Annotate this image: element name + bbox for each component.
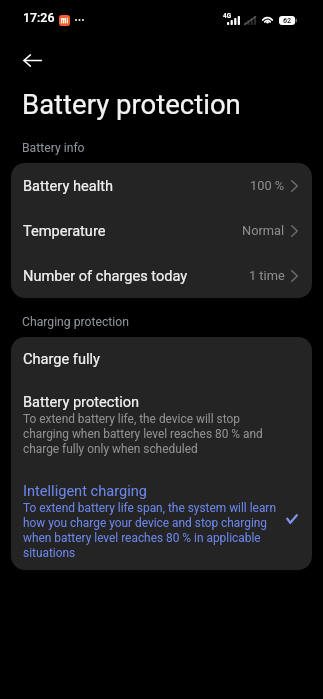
staticText: Number of charges today: [23, 268, 188, 284]
staticText: Battery info: [22, 141, 85, 155]
staticText: 17:26: [23, 12, 55, 25]
staticText: 4G: [223, 12, 232, 19]
button[interactable]: Temperature: [11, 208, 312, 253]
staticText: Battery health: [23, 178, 113, 194]
button[interactable]: Charge fully: [11, 337, 312, 380]
button[interactable]: Battery protection: [11, 380, 312, 456]
staticText: Temperature: [23, 223, 106, 239]
staticText: To extend battery life, the device will …: [23, 411, 278, 456]
button[interactable]: Back: [13, 47, 51, 74]
staticText: 100 %: [250, 179, 285, 193]
staticText: Intelligent charging: [23, 483, 147, 500]
staticText: Charge fully: [23, 351, 100, 367]
staticText: 1 time: [249, 269, 285, 283]
button[interactable]: Intelligent charging: [11, 456, 312, 560]
staticText: Battery protection: [23, 394, 140, 411]
staticText: Battery protection: [22, 89, 241, 121]
staticText: Charging protection: [22, 315, 129, 329]
button[interactable]: Number of charges today: [11, 253, 312, 298]
button[interactable]: Battery health: [11, 163, 312, 208]
staticText: To extend battery life span, the system …: [23, 500, 278, 560]
staticText: Normal: [242, 224, 285, 238]
staticText: 62: [283, 17, 292, 25]
